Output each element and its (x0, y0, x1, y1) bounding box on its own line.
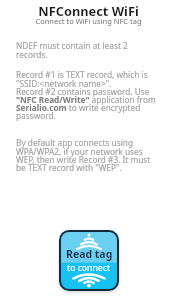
staticText: Connect to WiFi using NFC tag (0, 16, 177, 26)
staticText: Record #1 is TEXT record, which is "SSID… (16, 69, 156, 121)
button[interactable]: Read tag to connect (59, 230, 119, 291)
staticText: Read tag (66, 247, 113, 261)
staticText: NDEF must contain at least 2 records. (16, 40, 128, 60)
staticText: By default app connects using WPA/WPA2, … (16, 137, 151, 173)
staticText: NFConnect WiFi (0, 2, 177, 19)
staticText: to connect (67, 262, 111, 274)
